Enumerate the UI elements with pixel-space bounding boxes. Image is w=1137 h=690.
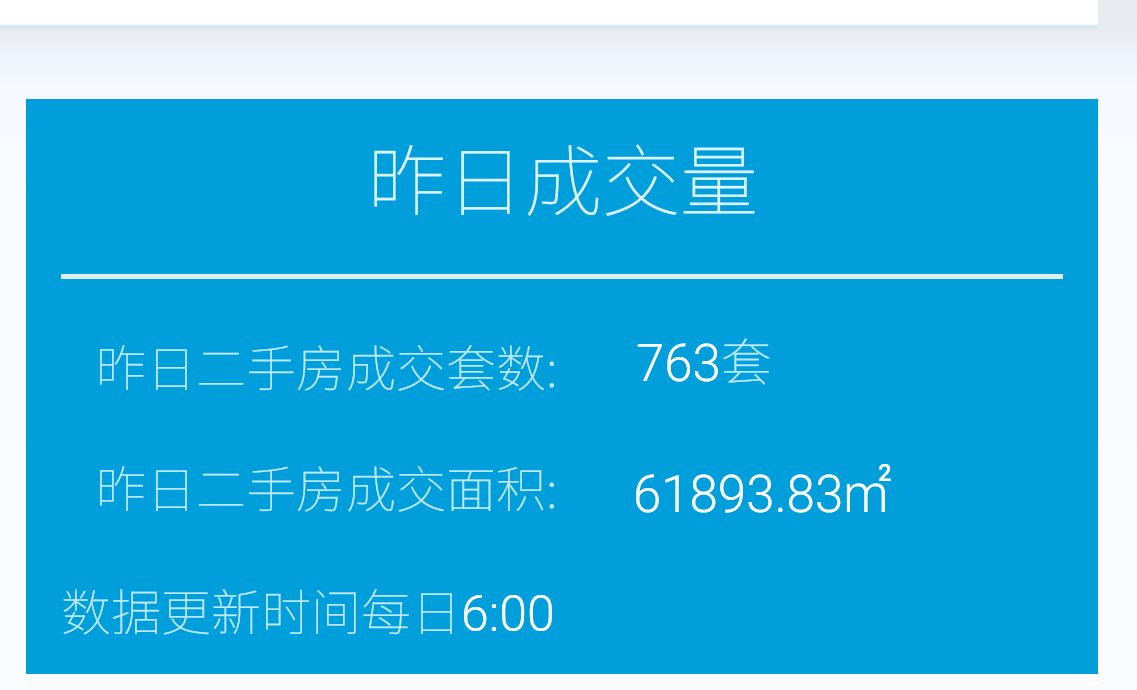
staticText: 61893.83m bbox=[633, 465, 889, 525]
staticText: 昨日二手房成交套数: bbox=[96, 329, 558, 401]
staticText: 昨日成交量 bbox=[368, 120, 759, 233]
staticText: 数据更新时间每日6:00 bbox=[61, 573, 555, 645]
staticText: 2 bbox=[878, 459, 892, 487]
staticText: 昨日二手房成交面积: bbox=[96, 450, 558, 522]
staticText: 763套 bbox=[636, 322, 772, 396]
button[interactable]: 昨日成交量汇总卡片 bbox=[26, 99, 1098, 674]
